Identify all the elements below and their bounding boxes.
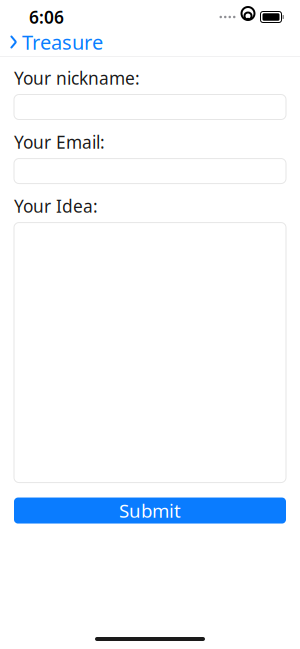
staticText: Your Email: [14,130,105,153]
button[interactable]: Treasure [0,24,113,60]
staticText: Treasure [22,29,103,55]
staticText: Submit [119,498,181,523]
staticText: Your nickname: [14,66,140,89]
button[interactable]: Submit [14,498,286,524]
staticText: Your Idea: [14,194,98,217]
staticText: 6:06 [29,5,64,28]
